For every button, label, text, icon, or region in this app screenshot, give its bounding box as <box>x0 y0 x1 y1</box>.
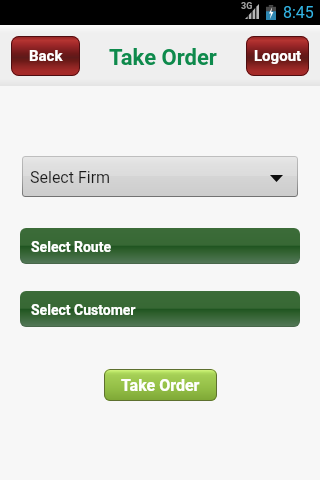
staticText: 3G <box>241 1 253 12</box>
staticText: Back <box>29 47 63 65</box>
button[interactable]: Select Route <box>20 228 300 264</box>
button[interactable]: Select Firm <box>22 156 298 197</box>
button[interactable]: Logout <box>246 36 309 76</box>
staticText: Take Order <box>121 376 200 395</box>
staticText: Take Order <box>109 45 217 71</box>
staticText: 8:45 <box>283 3 314 22</box>
button[interactable]: Back <box>11 36 80 76</box>
staticText: Select Firm <box>30 168 111 187</box>
staticText: Logout <box>254 47 302 65</box>
staticText: Select Route <box>31 239 111 255</box>
staticText: Select Customer <box>31 302 136 318</box>
button[interactable]: Select Customer <box>20 291 300 327</box>
button[interactable]: Take Order <box>104 369 217 401</box>
